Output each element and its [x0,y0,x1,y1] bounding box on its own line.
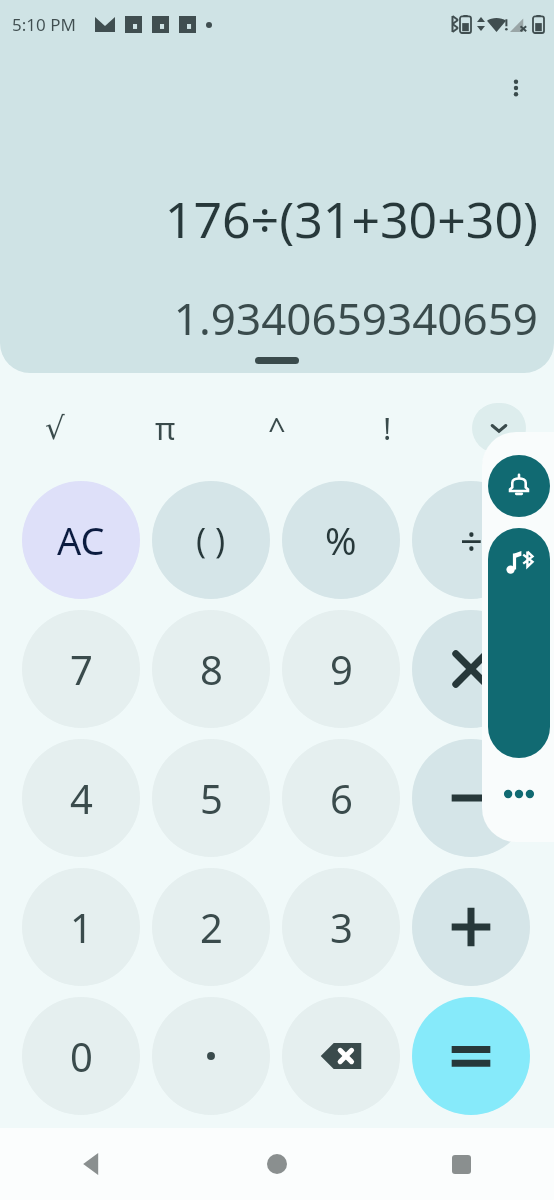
staticText: √ [45,410,65,446]
button[interactable]: π [110,397,221,459]
staticText: 5 [200,771,223,825]
button[interactable] [412,997,530,1115]
other: Expand [472,403,526,453]
staticText: % [325,514,357,566]
button[interactable]: Recent apps [369,1128,554,1200]
button[interactable]: Expand [443,397,554,459]
button[interactable]: Back [0,1128,184,1200]
staticText: 1 [70,900,93,954]
button[interactable]: More options [490,62,542,114]
button[interactable] [152,997,270,1115]
button[interactable]: ( ) [152,481,270,599]
staticText: 3 [330,900,353,954]
button[interactable]: 0 [22,997,140,1115]
button[interactable]: % [282,481,400,599]
button[interactable]: More volume settings [500,780,538,808]
staticText: 176÷(31+30+30) [16,185,538,253]
staticText: 1.9340659340659 [16,288,538,348]
button[interactable]: ! [332,397,443,459]
staticText: 0 [70,1029,93,1083]
button[interactable]: Ring mode [488,455,550,517]
button[interactable] [282,997,400,1115]
staticText: 2 [200,900,223,954]
button[interactable]: 6 [282,739,400,857]
button[interactable]: 3 [282,868,400,986]
button[interactable]: Media volume [488,528,550,758]
staticText: 5:10 PM [12,13,76,36]
button[interactable]: ÷ [412,481,530,599]
staticText: 4 [70,771,93,825]
button[interactable]: 1 [22,868,140,986]
button[interactable]: AC [22,481,140,599]
staticText: π [155,407,176,449]
staticText: ! [383,407,392,449]
staticText: ÷ [460,513,483,567]
staticText: ^ [268,407,286,449]
button[interactable]: 8 [152,610,270,728]
staticText: 6 [330,771,353,825]
button[interactable]: ^ [221,397,332,459]
staticText: 9 [330,642,353,696]
button[interactable]: 5 [152,739,270,857]
button[interactable]: √ [0,397,110,459]
button[interactable]: 4 [22,739,140,857]
button[interactable] [412,868,530,986]
button[interactable]: 2 [152,868,270,986]
staticText: 8 [200,642,223,696]
button[interactable] [412,610,530,728]
button[interactable]: 9 [282,610,400,728]
staticText: AC [57,514,105,566]
button[interactable]: 7 [22,610,140,728]
staticText: 7 [70,642,93,696]
button[interactable] [412,739,530,857]
staticText: ( ) [196,517,226,563]
button[interactable]: Home [184,1128,369,1200]
